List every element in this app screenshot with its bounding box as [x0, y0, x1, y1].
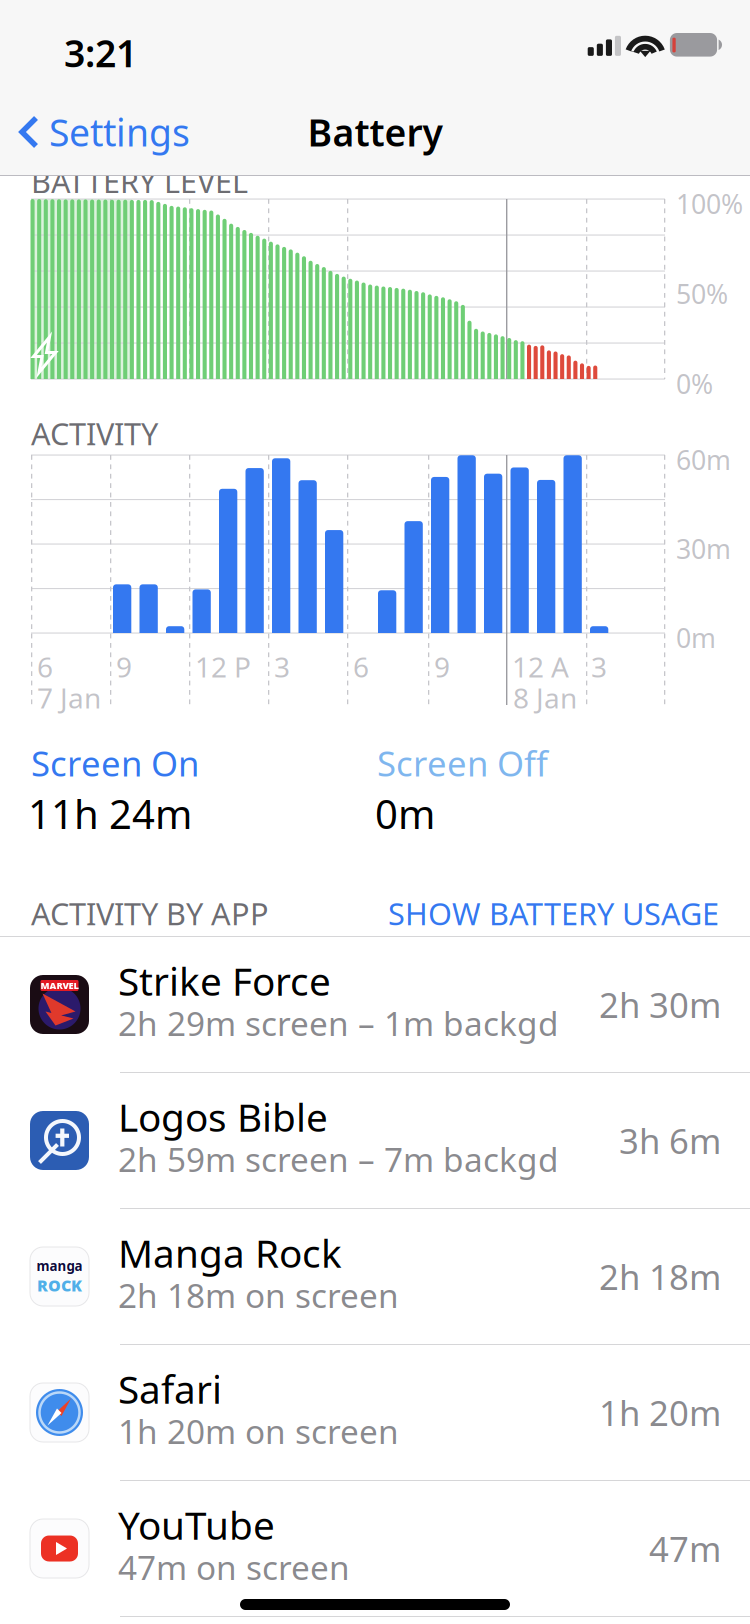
button[interactable]: Safari — [0, 1345, 750, 1480]
staticText: ACTIVITY — [31, 413, 158, 454]
staticText: 3h 6m — [619, 1117, 721, 1163]
staticText: 47m on screen — [118, 1545, 350, 1589]
staticText: 2h 18m — [599, 1253, 721, 1299]
staticText: YouTube — [118, 1499, 275, 1550]
staticText: 8 Jan — [513, 679, 577, 716]
staticText: 9 — [434, 648, 450, 685]
button[interactable]: MARVEL — [0, 937, 750, 1072]
button[interactable]: SHOW BATTERY USAGE — [388, 887, 719, 940]
staticText: 11h 24m — [28, 787, 192, 840]
button[interactable]: YouTube — [0, 1481, 750, 1616]
staticText: ROCK — [37, 1275, 82, 1296]
staticText: 3 — [274, 648, 290, 685]
staticText: Battery — [307, 107, 442, 157]
staticText: 3:21 — [64, 28, 137, 78]
button[interactable]: manga — [0, 1209, 750, 1344]
staticText: 30m — [676, 531, 731, 566]
staticText: Strike Force — [118, 955, 331, 1006]
staticText: Manga Rock — [118, 1227, 342, 1278]
staticText: BATTERY LEVEL — [31, 161, 248, 202]
staticText: 0m — [676, 620, 716, 655]
staticText: 7 Jan — [37, 679, 101, 716]
staticText: 0% — [676, 366, 713, 401]
staticText: 1h 20m on screen — [118, 1409, 399, 1453]
staticText: 2h 29m screen – 1m backgd — [118, 1001, 559, 1045]
staticText: 47m — [649, 1525, 721, 1571]
staticText: MARVEL — [40, 979, 78, 992]
staticText: ACTIVITY BY APP — [31, 893, 269, 934]
staticText: 50% — [676, 276, 728, 311]
staticText: Safari — [118, 1363, 222, 1414]
staticText: 6 — [353, 648, 369, 685]
staticText: 2h 18m on screen — [118, 1273, 399, 1317]
staticText: 12 A — [512, 648, 569, 685]
staticText: 2h 59m screen – 7m backgd — [118, 1137, 559, 1181]
staticText: 0m — [375, 787, 435, 840]
button[interactable]: Logos Bible — [0, 1073, 750, 1208]
staticText: Screen Off — [377, 740, 548, 786]
button[interactable]: Settings — [0, 93, 190, 171]
staticText: 2h 30m — [599, 981, 721, 1027]
staticText: 3 — [591, 648, 607, 685]
staticText: SHOW BATTERY USAGE — [388, 893, 719, 934]
staticText: 60m — [676, 442, 731, 477]
staticText: 6 — [37, 648, 53, 685]
staticText: manga — [36, 1257, 82, 1275]
staticText: 9 — [116, 648, 132, 685]
staticText: 1h 20m — [599, 1389, 721, 1435]
staticText: Logos Bible — [118, 1091, 328, 1142]
staticText: Settings — [49, 107, 190, 157]
staticText: 12 P — [195, 648, 251, 685]
staticText: 100% — [676, 186, 743, 221]
staticText: Screen On — [31, 740, 199, 786]
